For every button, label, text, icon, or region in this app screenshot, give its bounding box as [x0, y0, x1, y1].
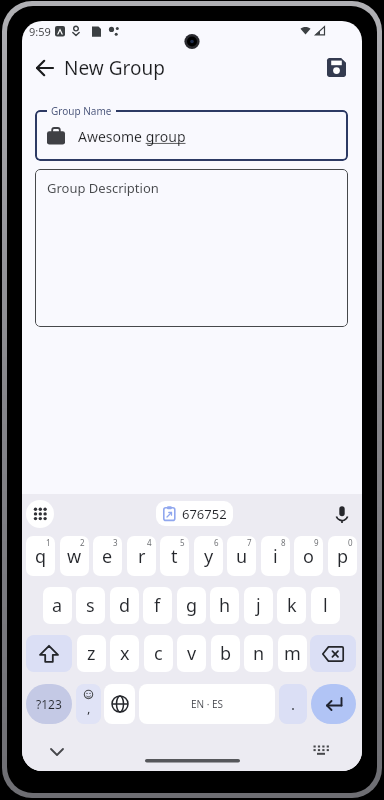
button[interactable]: [35, 110, 348, 161]
staticText: l: [323, 593, 328, 618]
staticText: 0: [348, 537, 353, 548]
button[interactable]: b: [211, 635, 240, 672]
staticText: k: [287, 593, 297, 618]
button[interactable]: [35, 169, 348, 327]
staticText: 6: [214, 537, 219, 548]
staticText: e: [102, 544, 113, 569]
button[interactable]: [328, 501, 355, 528]
button[interactable]: v: [177, 635, 206, 672]
staticText: q: [35, 544, 47, 569]
staticText: g: [186, 593, 198, 618]
staticText: x: [120, 641, 130, 666]
button[interactable]: a: [43, 587, 72, 624]
staticText: Group Description: [47, 179, 159, 197]
button[interactable]: c: [144, 635, 173, 672]
button[interactable]: [46, 744, 68, 760]
staticText: v: [187, 641, 197, 666]
staticText: o: [303, 544, 314, 569]
button[interactable]: [26, 500, 54, 528]
staticText: 7: [247, 537, 252, 548]
staticText: u: [236, 544, 248, 569]
button[interactable]: EN · ES: [139, 684, 275, 724]
staticText: 8: [281, 537, 286, 548]
staticText: Awesome group: [78, 127, 186, 146]
staticText: r: [138, 544, 146, 569]
button[interactable]: e: [93, 536, 122, 576]
staticText: h: [219, 593, 231, 618]
button[interactable]: l: [311, 587, 340, 624]
staticText: 5: [180, 537, 185, 548]
button[interactable]: [26, 635, 72, 672]
button[interactable]: [310, 635, 356, 672]
button[interactable]: k: [277, 587, 306, 624]
button[interactable]: f: [143, 587, 172, 624]
staticText: f: [154, 593, 161, 618]
button[interactable]: j: [244, 587, 273, 624]
staticText: j: [256, 593, 261, 618]
button[interactable]: w: [60, 536, 89, 576]
button[interactable]: m: [278, 635, 307, 672]
staticText: d: [119, 593, 131, 618]
staticText: t: [171, 544, 178, 569]
button[interactable]: r: [127, 536, 156, 576]
staticText: m: [284, 641, 301, 666]
staticText: 2: [80, 537, 85, 548]
button[interactable]: [311, 684, 356, 724]
button[interactable]: d: [110, 587, 139, 624]
staticText: 3: [113, 537, 118, 548]
button[interactable]: .: [279, 684, 307, 724]
button[interactable]: z: [77, 635, 106, 672]
staticText: ?123: [36, 696, 62, 712]
button[interactable]: y: [194, 536, 223, 576]
staticText: b: [220, 641, 232, 666]
staticText: p: [337, 544, 349, 569]
button[interactable]: q: [26, 536, 55, 576]
staticText: New Group: [64, 55, 165, 81]
staticText: .: [291, 694, 296, 714]
staticText: a: [52, 593, 63, 618]
staticText: 9:59: [29, 24, 51, 39]
staticText: i: [273, 544, 278, 569]
button[interactable]: s: [76, 587, 105, 624]
button[interactable]: o: [294, 536, 323, 576]
button[interactable]: ?123: [26, 684, 72, 724]
staticText: y: [204, 544, 214, 569]
button[interactable]: p: [328, 536, 357, 576]
button[interactable]: [104, 684, 135, 724]
staticText: 9: [314, 537, 319, 548]
staticText: 4: [147, 537, 152, 548]
button[interactable]: n: [244, 635, 273, 672]
button[interactable]: g: [177, 587, 206, 624]
button[interactable]: [310, 742, 332, 760]
button[interactable]: ,: [76, 684, 101, 724]
staticText: 1: [46, 537, 51, 548]
staticText: w: [67, 544, 82, 569]
button[interactable]: [30, 53, 60, 83]
button[interactable]: [318, 49, 354, 85]
staticText: Group Name: [51, 104, 112, 118]
button[interactable]: i: [261, 536, 290, 576]
button[interactable]: h: [210, 587, 239, 624]
staticText: EN · ES: [191, 697, 224, 711]
button[interactable]: x: [110, 635, 139, 672]
staticText: c: [154, 641, 163, 666]
staticText: ,: [87, 699, 91, 717]
staticText: n: [253, 641, 265, 666]
button[interactable]: t: [160, 536, 189, 576]
button[interactable]: [156, 501, 233, 526]
staticText: z: [87, 641, 96, 666]
staticText: 676752: [182, 505, 227, 523]
staticText: s: [86, 593, 95, 618]
button[interactable]: u: [227, 536, 256, 576]
